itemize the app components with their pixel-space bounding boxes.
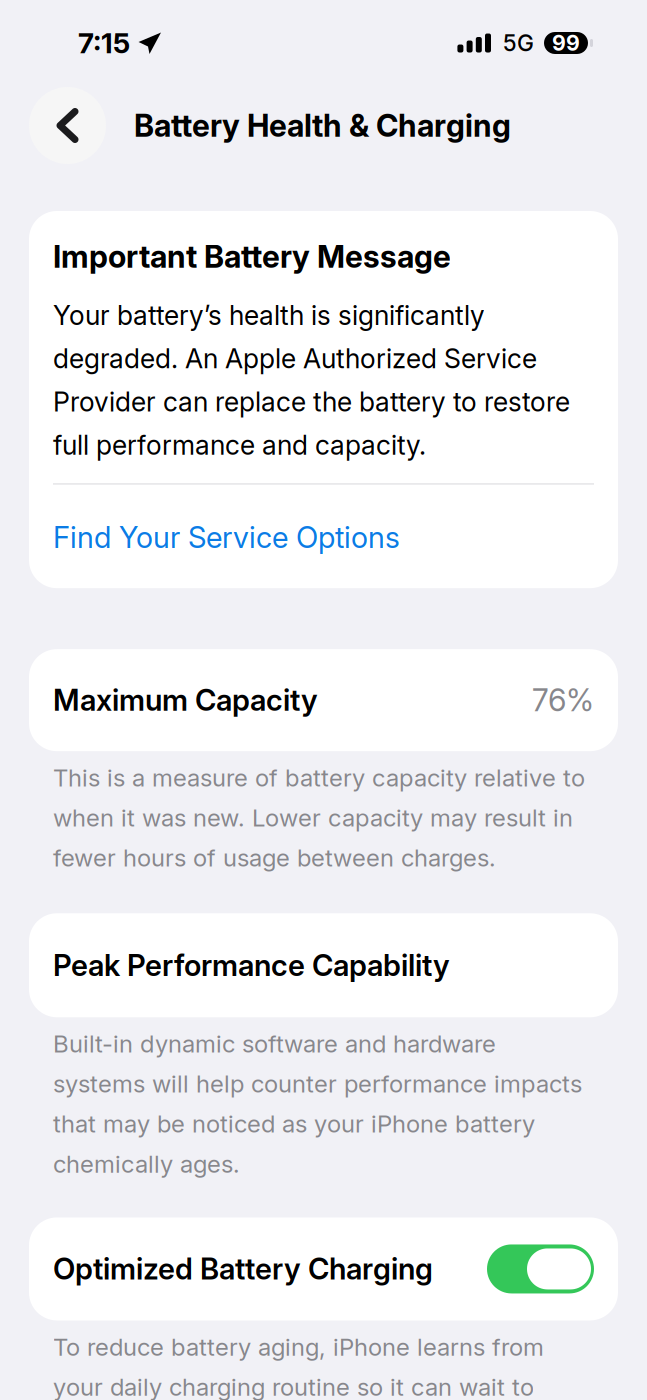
staticText: Battery Health & Charging <box>134 107 511 144</box>
staticText: 99 <box>552 30 580 56</box>
button[interactable]: Peak Performance Capability <box>29 913 618 1017</box>
staticText: 7:15 <box>78 26 130 60</box>
staticText: Built-in dynamic software and hardware s… <box>53 1029 582 1178</box>
staticText: This is a measure of battery capacity re… <box>53 763 585 872</box>
staticText: Your battery’s health is significantly d… <box>53 299 570 461</box>
staticText: Peak Performance Capability <box>53 947 450 983</box>
staticText: Important Battery Message <box>53 238 451 275</box>
staticText: Maximum Capacity <box>53 682 318 718</box>
staticText: To reduce battery aging, iPhone learns f… <box>53 1332 544 1400</box>
staticText: Find Your Service Options <box>53 520 400 555</box>
button[interactable]: Back <box>29 87 106 164</box>
button[interactable]: Optimized Battery Charging <box>487 1244 594 1293</box>
button[interactable]: Find Your Service Options <box>53 485 594 588</box>
staticText: Optimized Battery Charging <box>53 1251 433 1287</box>
staticText: 76% <box>532 682 594 719</box>
staticText: 5G <box>503 29 534 57</box>
